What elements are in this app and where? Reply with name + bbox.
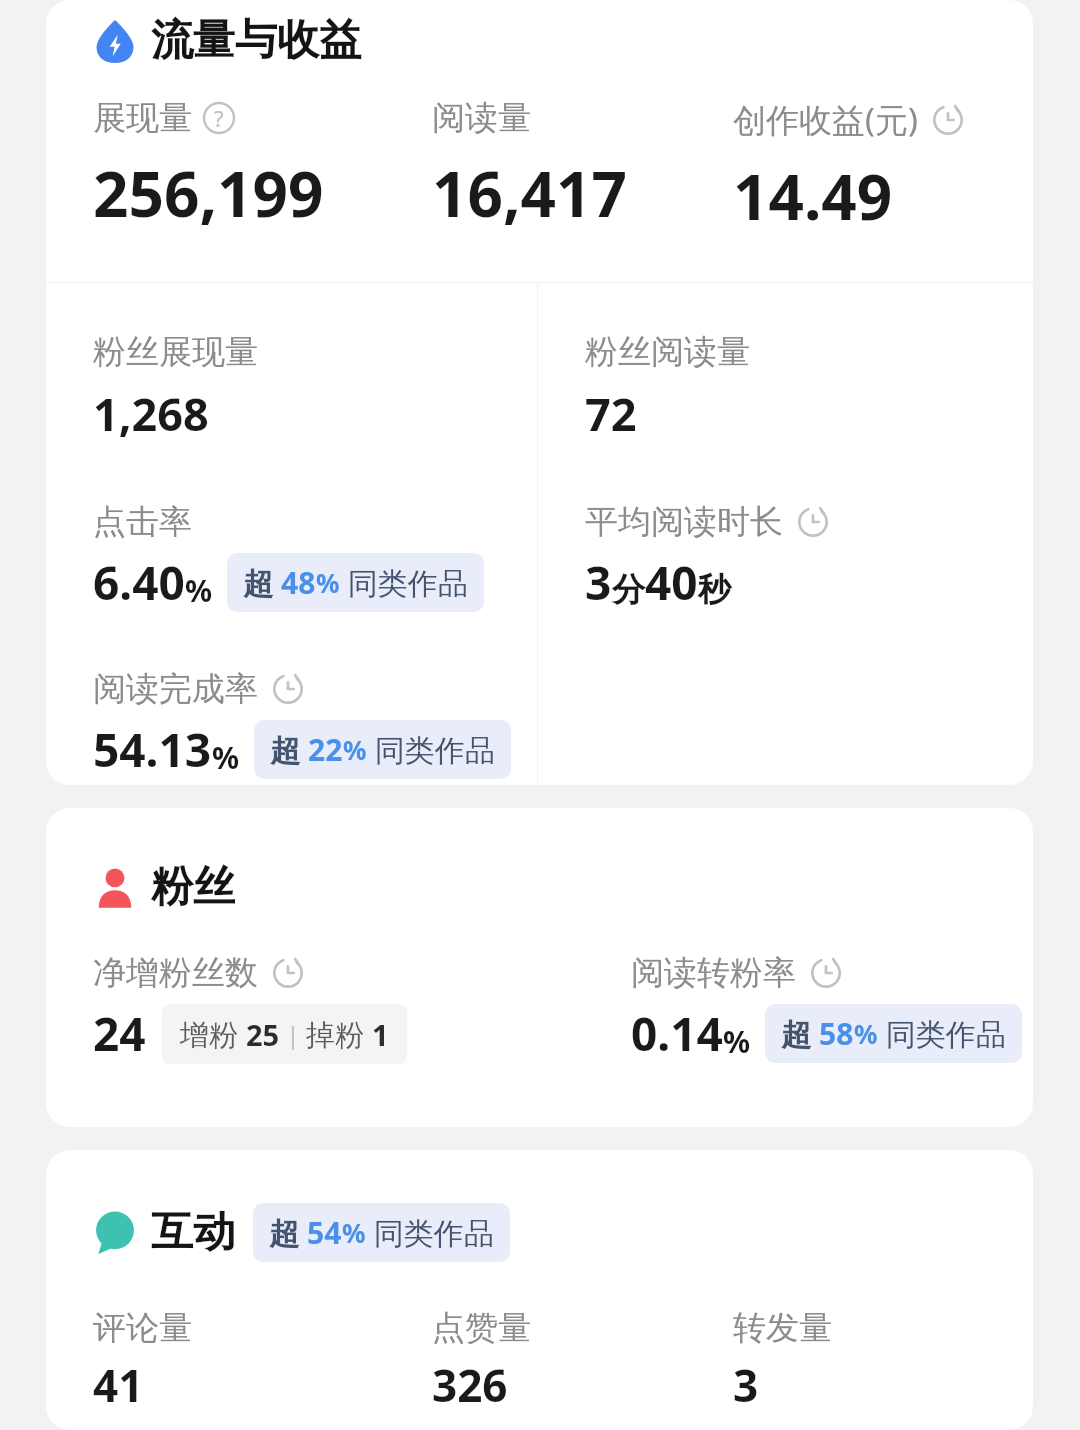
staticText: 阅读转粉率 bbox=[631, 952, 796, 994]
staticText: 58 bbox=[819, 1013, 854, 1054]
staticText: | bbox=[280, 1018, 306, 1051]
staticText: 3 bbox=[585, 551, 612, 614]
button[interactable]: 转发量 bbox=[733, 1307, 1033, 1415]
button[interactable]: 阅读量 bbox=[432, 97, 733, 235]
staticText: 72 bbox=[585, 383, 637, 444]
staticText: 创作收益(元) bbox=[733, 97, 918, 142]
button[interactable]: 粉丝阅读量 bbox=[585, 331, 750, 444]
button[interactable]: 粉丝 bbox=[93, 861, 1033, 914]
staticText: 平均阅读时长 bbox=[585, 501, 783, 543]
staticText: 22 bbox=[308, 729, 343, 770]
button[interactable]: 平均阅读时长 bbox=[585, 501, 831, 614]
staticText: 41 bbox=[93, 1355, 144, 1415]
staticText: 3 bbox=[733, 1355, 759, 1415]
staticText: % bbox=[185, 570, 213, 611]
button[interactable]: 超 bbox=[227, 553, 484, 612]
button[interactable]: 增粉 bbox=[162, 1004, 407, 1064]
button[interactable]: 净增粉丝数 bbox=[93, 952, 631, 1065]
other: 互动 bbox=[93, 1211, 137, 1255]
staticText: 25 bbox=[246, 1015, 280, 1054]
other: 流量与收益 bbox=[93, 19, 137, 63]
staticText: 评论量 bbox=[93, 1307, 192, 1349]
staticText: 流量与收益 bbox=[151, 14, 361, 67]
staticText: 1 bbox=[372, 1015, 389, 1054]
button[interactable]: 超 bbox=[254, 720, 511, 779]
staticText: 40 bbox=[645, 551, 698, 614]
button[interactable]: 阅读完成率 bbox=[93, 668, 511, 781]
button[interactable]: 超 bbox=[253, 1203, 510, 1262]
staticText: % bbox=[212, 737, 240, 778]
button[interactable]: 粉丝展现量 bbox=[93, 331, 258, 444]
other: 粉丝 bbox=[93, 866, 137, 910]
button[interactable]: 点击率 bbox=[93, 501, 484, 614]
staticText: 16,417 bbox=[432, 151, 627, 235]
staticText: 秒 bbox=[698, 569, 731, 611]
staticText: 粉丝展现量 bbox=[93, 331, 258, 373]
staticText: 超 bbox=[269, 1212, 307, 1253]
staticText: 转发量 bbox=[733, 1307, 832, 1349]
staticText: 净增粉丝数 bbox=[93, 952, 258, 994]
staticText: 同类作品 bbox=[340, 562, 468, 603]
staticText: 同类作品 bbox=[366, 1212, 494, 1253]
other: 数据更新说明 bbox=[270, 955, 306, 991]
staticText: 粉丝阅读量 bbox=[585, 331, 750, 373]
other: 数据更新说明 bbox=[795, 504, 831, 540]
staticText: 分 bbox=[612, 569, 645, 611]
staticText: 掉粉 bbox=[306, 1014, 372, 1054]
button[interactable]: 流量与收益 bbox=[93, 14, 1033, 67]
button[interactable]: 超 bbox=[765, 1004, 1022, 1063]
staticText: 增粉 bbox=[180, 1014, 246, 1054]
staticText: 点赞量 bbox=[432, 1307, 531, 1349]
staticText: 粉丝 bbox=[151, 861, 235, 914]
other: 数据更新说明 bbox=[930, 102, 966, 138]
button[interactable]: 点赞量 bbox=[432, 1307, 733, 1415]
staticText: 同类作品 bbox=[878, 1013, 1006, 1054]
staticText: ? bbox=[214, 103, 224, 133]
staticText: 14.49 bbox=[733, 154, 893, 238]
staticText: % bbox=[854, 1016, 878, 1051]
staticText: 256,199 bbox=[93, 151, 324, 235]
staticText: 24 bbox=[93, 1002, 146, 1065]
button[interactable]: 阅读转粉率 bbox=[631, 952, 1033, 1065]
staticText: % bbox=[342, 1215, 366, 1250]
staticText: 超 bbox=[781, 1013, 819, 1054]
staticText: 点击率 bbox=[93, 501, 192, 543]
staticText: 互动 bbox=[151, 1206, 235, 1259]
button[interactable]: 创作收益(元) bbox=[733, 97, 1033, 238]
staticText: % bbox=[723, 1021, 751, 1062]
button[interactable]: 说明 bbox=[202, 101, 236, 135]
staticText: 同类作品 bbox=[367, 729, 495, 770]
staticText: 超 bbox=[243, 562, 281, 603]
staticText: 326 bbox=[432, 1355, 508, 1415]
other: 数据更新说明 bbox=[270, 671, 306, 707]
staticText: 54.13 bbox=[93, 718, 212, 781]
staticText: 超 bbox=[270, 729, 308, 770]
staticText: 阅读量 bbox=[432, 97, 531, 139]
staticText: % bbox=[316, 565, 340, 600]
staticText: 0.14 bbox=[631, 1002, 723, 1065]
staticText: 展现量 bbox=[93, 97, 192, 139]
other: 数据更新说明 bbox=[808, 955, 844, 991]
button[interactable]: 展现量 bbox=[93, 97, 432, 235]
staticText: 1,268 bbox=[93, 383, 209, 444]
staticText: 48 bbox=[281, 562, 316, 603]
staticText: 6.40 bbox=[93, 551, 185, 614]
staticText: 阅读完成率 bbox=[93, 668, 258, 710]
staticText: % bbox=[343, 732, 367, 767]
button[interactable]: 评论量 bbox=[93, 1307, 432, 1415]
staticText: 54 bbox=[307, 1212, 342, 1253]
